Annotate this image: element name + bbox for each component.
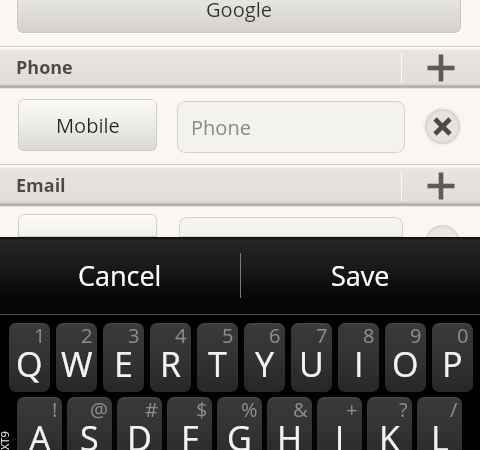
staticText: J (335, 415, 345, 450)
button[interactable]: Cancel (0, 237, 240, 314)
button[interactable]: Delete phone number (423, 107, 462, 146)
staticText: Mobile (56, 112, 120, 139)
staticText: 1 (34, 323, 46, 349)
staticText: 8 (363, 323, 375, 349)
staticText: L (431, 415, 449, 450)
button[interactable]: / (417, 397, 462, 450)
staticText: F (181, 415, 199, 450)
staticText: H (277, 415, 303, 450)
button[interactable]: Phone (177, 101, 405, 153)
staticText: $ (196, 397, 208, 423)
staticText: Email (16, 173, 66, 198)
button[interactable]: & (267, 397, 312, 450)
button[interactable]: 2 (56, 323, 97, 392)
staticText: G (227, 415, 252, 450)
staticText: Y (255, 341, 275, 387)
staticText: O (392, 341, 419, 387)
button[interactable]: + (317, 397, 362, 450)
staticText: W (61, 341, 93, 387)
button[interactable]: ! (17, 397, 62, 450)
staticText: 7 (316, 323, 328, 349)
staticText: 9 (410, 323, 422, 349)
staticText: # (145, 397, 158, 423)
button[interactable]: 6 (244, 323, 285, 392)
staticText: @ (90, 397, 108, 423)
staticText: D (127, 415, 152, 450)
button[interactable]: 5 (197, 323, 238, 392)
staticText: Phone (16, 55, 73, 80)
staticText: % (241, 397, 258, 423)
button[interactable]: Add Phone (402, 46, 480, 89)
staticText: U (299, 341, 324, 387)
staticText: / (450, 397, 458, 423)
staticText: P (442, 341, 463, 387)
button[interactable]: % (217, 397, 262, 450)
button[interactable]: ? (367, 397, 412, 450)
staticText: ? (399, 397, 408, 423)
button[interactable]: Mobile (18, 99, 157, 151)
button[interactable]: 3 (103, 323, 144, 392)
button[interactable]: 0 (432, 323, 473, 392)
staticText: 3 (128, 323, 140, 349)
staticText: Save (331, 257, 390, 294)
staticText: Phone (191, 114, 251, 141)
staticText: 0 (457, 323, 469, 349)
button[interactable]: Add Email (402, 164, 480, 207)
staticText: T (208, 341, 227, 387)
button[interactable]: Google (17, 0, 461, 33)
staticText: & (293, 397, 308, 423)
staticText: I (354, 341, 364, 387)
staticText: ! (52, 397, 58, 423)
staticText: XT9 (0, 431, 12, 450)
staticText: Q (16, 341, 43, 387)
staticText: A (29, 415, 51, 450)
button[interactable]: @ (67, 397, 112, 450)
staticText: S (80, 415, 99, 450)
staticText: 2 (81, 323, 93, 349)
staticText: Google (206, 0, 272, 23)
staticText: 5 (222, 323, 234, 349)
button[interactable]: 4 (150, 323, 191, 392)
button[interactable]: Save (240, 237, 480, 314)
button[interactable]: # (117, 397, 162, 450)
staticText: 6 (269, 323, 281, 349)
button[interactable]: 8 (338, 323, 379, 392)
staticText: + (346, 397, 358, 423)
button[interactable]: $ (167, 397, 212, 450)
button[interactable]: 7 (291, 323, 332, 392)
staticText: E (114, 341, 133, 387)
staticText: 4 (175, 323, 187, 349)
staticText: Cancel (78, 257, 162, 294)
staticText: K (379, 415, 400, 450)
staticText: R (160, 341, 182, 387)
button[interactable]: 1 (9, 323, 50, 392)
button[interactable]: 9 (385, 323, 426, 392)
